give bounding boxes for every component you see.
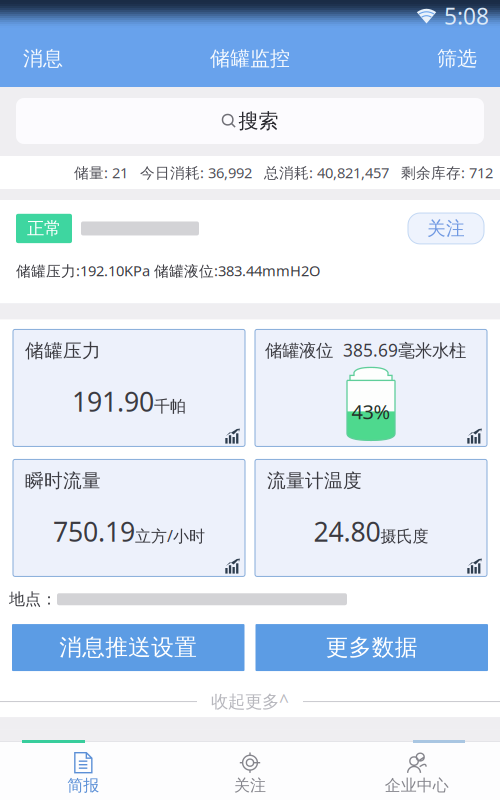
staticText: 企业中心: [385, 776, 449, 795]
button[interactable]: 搜索: [16, 98, 484, 144]
button[interactable]: 储罐液位 385.69毫米水柱: [255, 329, 487, 446]
button[interactable]: 更多数据: [255, 624, 488, 671]
staticText: 立方/小时: [135, 525, 205, 546]
button[interactable]: 消息: [0, 30, 79, 87]
button[interactable]: 关注: [167, 741, 333, 800]
button[interactable]: 企业中心: [333, 741, 500, 800]
staticText: 收起更多^: [211, 689, 289, 712]
staticText: 储量: 21 今日消耗: 36,992 总消耗: 40,821,457 剩余库存…: [74, 163, 493, 182]
staticText: 正常: [27, 218, 61, 239]
staticText: 储罐压力:192.10KPa 储罐液位:383.44mmH2O: [16, 261, 320, 280]
button[interactable]: 流量计温度: [255, 459, 487, 576]
staticText: 消息推送设置: [59, 634, 197, 661]
staticText: 千帕: [154, 397, 186, 416]
staticText: 关注: [427, 217, 465, 240]
button[interactable]: 储罐压力: [13, 329, 245, 446]
button[interactable]: 筛选: [421, 30, 500, 87]
button[interactable]: 简报: [0, 741, 167, 800]
staticText: 750.19: [53, 514, 135, 549]
staticText: 流量计温度: [267, 469, 362, 492]
staticText: 储罐液位 385.69毫米水柱: [265, 338, 466, 361]
staticText: 消息: [23, 46, 63, 71]
staticText: 储罐监控: [210, 46, 290, 71]
staticText: 简报: [67, 776, 99, 795]
button[interactable]: 关注: [408, 213, 484, 244]
staticText: 5:08: [444, 1, 489, 31]
staticText: 24.80: [313, 514, 380, 549]
staticText: 摄氏度: [380, 527, 428, 546]
staticText: 筛选: [437, 46, 477, 71]
button[interactable]: 瞬时流量: [13, 459, 245, 576]
button[interactable]: 收起更多^: [0, 685, 500, 717]
staticText: 储罐压力: [25, 339, 101, 362]
button[interactable]: 消息推送设置: [12, 624, 244, 671]
staticText: 更多数据: [326, 634, 418, 661]
staticText: 191.90: [72, 384, 154, 419]
staticText: 瞬时流量: [25, 469, 101, 492]
staticText: 关注: [234, 776, 266, 795]
staticText: 搜索: [238, 109, 278, 133]
staticText: 43%: [351, 398, 390, 425]
staticText: 地点：: [9, 589, 57, 609]
